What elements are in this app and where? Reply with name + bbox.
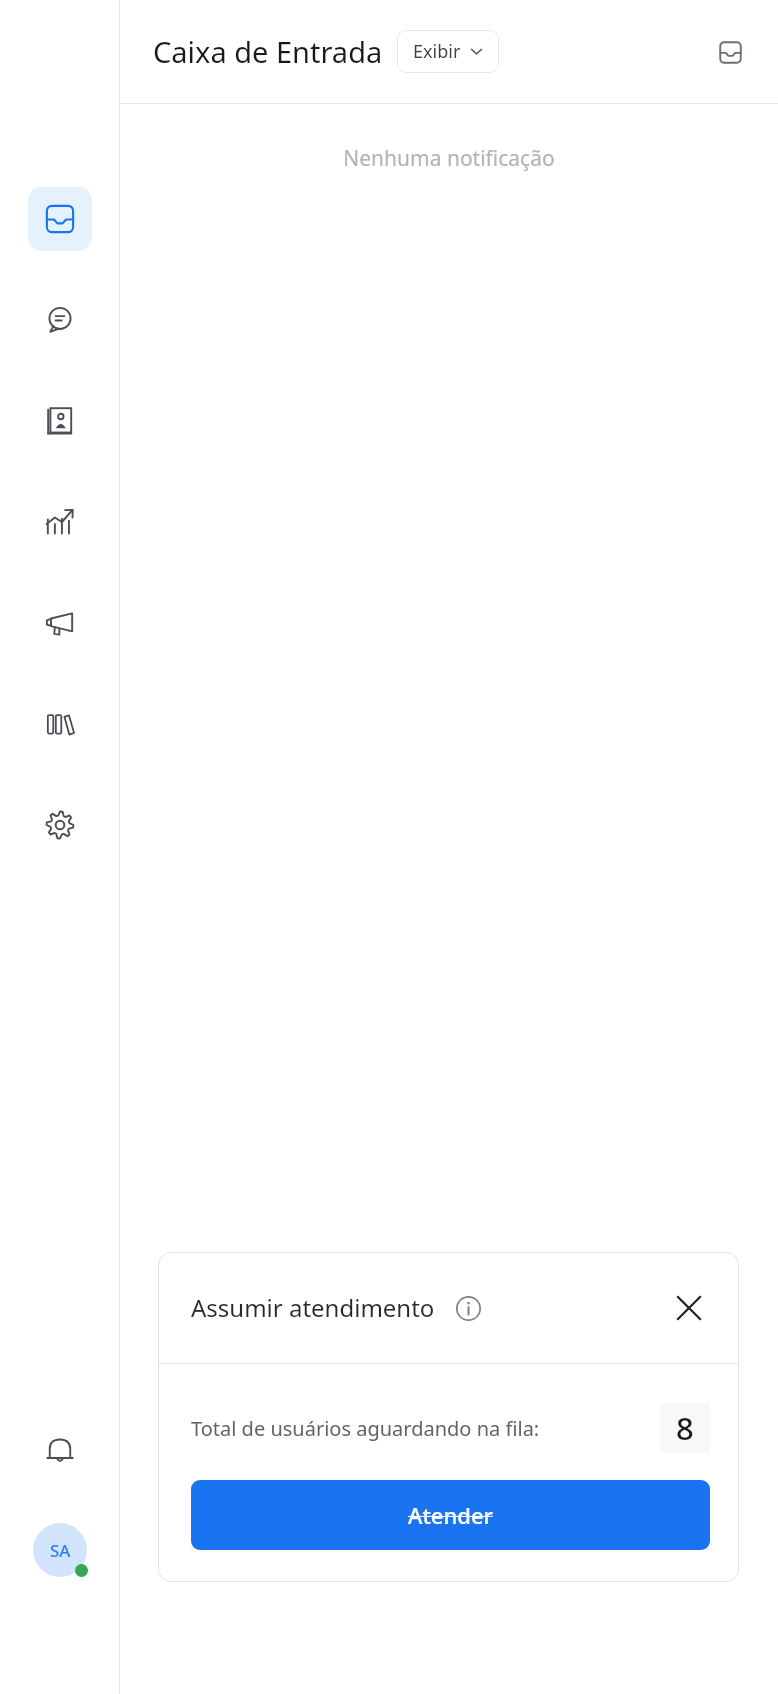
staticText: Exibir [413, 39, 461, 64]
button[interactable]: Biblioteca [28, 692, 92, 756]
staticText: Total de usuários aguardando na fila: [191, 1415, 540, 1442]
button[interactable]: Campanhas [28, 591, 92, 655]
button[interactable]: Contatos [28, 389, 92, 453]
button[interactable]: Conversas [28, 288, 92, 352]
staticText: Atender [408, 1500, 493, 1530]
staticText: Assumir atendimento [191, 1291, 435, 1324]
button[interactable]: Configurações [28, 793, 92, 857]
button[interactable]: Atender [191, 1480, 710, 1550]
button[interactable]: Notificações [28, 1419, 92, 1483]
button[interactable]: Informação [451, 1291, 485, 1325]
button[interactable]: Caixa de Entrada [28, 187, 92, 251]
button[interactable]: Perfil SA [31, 1521, 89, 1579]
staticText: 8 [676, 1407, 694, 1449]
staticText: Caixa de Entrada [153, 32, 383, 71]
button[interactable]: Relatórios [28, 490, 92, 554]
staticText: SA [50, 1539, 71, 1562]
button[interactable]: Caixa [708, 30, 752, 74]
staticText: Nenhuma notificação [120, 144, 778, 173]
button[interactable]: Fechar [668, 1287, 710, 1329]
button[interactable]: Exibir [397, 30, 499, 73]
